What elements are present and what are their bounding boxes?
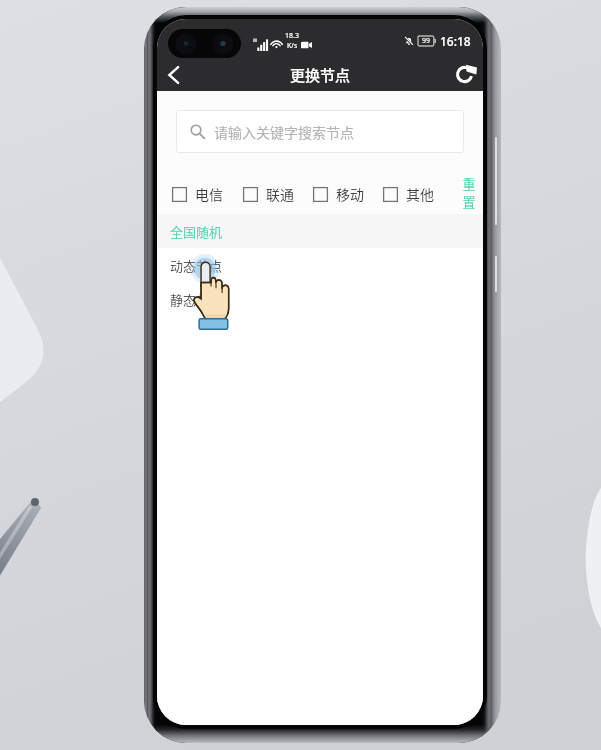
staticText: 动态节点 <box>170 256 223 275</box>
button[interactable]: 其他 <box>383 171 453 217</box>
button[interactable]: 重 置 <box>454 174 483 211</box>
button[interactable]: 移动 <box>313 171 383 217</box>
button[interactable]: 静态节点 <box>157 282 483 316</box>
staticText: 重 置 <box>462 174 476 211</box>
staticText: 请输入关键字搜索节点 <box>214 122 354 142</box>
staticText: 99 <box>422 36 431 46</box>
button[interactable]: Refresh <box>450 58 483 91</box>
staticText: 其他 <box>406 184 434 204</box>
button[interactable]: 联通 <box>243 171 313 217</box>
button[interactable]: Back <box>157 58 190 91</box>
button[interactable]: 电信 <box>172 171 243 217</box>
staticText: 移动 <box>336 184 364 204</box>
staticText: 更换节点 <box>290 64 351 86</box>
staticText: 全国随机 <box>170 222 223 241</box>
staticText: 18.3 <box>285 31 299 41</box>
staticText: 联通 <box>266 184 294 204</box>
staticText: 16:18 <box>440 33 471 49</box>
staticText: K/s <box>287 41 298 51</box>
staticText: 静态节点 <box>170 290 223 309</box>
button[interactable]: 请输入关键字搜索节点 <box>176 110 464 153</box>
staticText: 电信 <box>195 184 223 204</box>
button[interactable]: 动态节点 <box>157 248 483 282</box>
